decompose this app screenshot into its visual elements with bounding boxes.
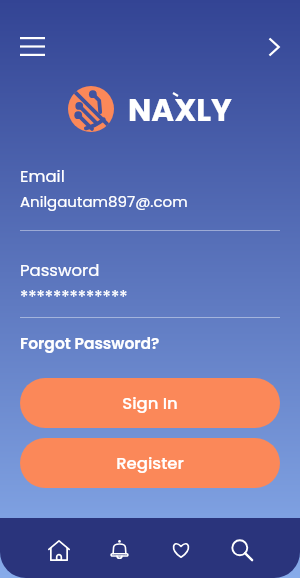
button[interactable]: Forgot Password? (20, 333, 160, 355)
staticText: Anilgautam897@.com (20, 191, 188, 212)
button[interactable]: Favorites (150, 520, 211, 578)
staticText: Email (20, 165, 65, 188)
button[interactable]: Next (254, 26, 295, 67)
button[interactable]: Register (20, 438, 280, 488)
button[interactable]: Menu (12, 26, 53, 67)
button[interactable]: Sign In (20, 378, 280, 428)
staticText: ************* (20, 285, 128, 309)
staticText: Register (116, 452, 184, 475)
staticText: Sign In (122, 392, 178, 415)
button[interactable]: Notifications (89, 520, 150, 578)
button[interactable]: Search (211, 520, 272, 578)
staticText: NAXLY (128, 88, 232, 131)
button[interactable]: Home (28, 520, 89, 578)
staticText: Password (20, 259, 100, 282)
